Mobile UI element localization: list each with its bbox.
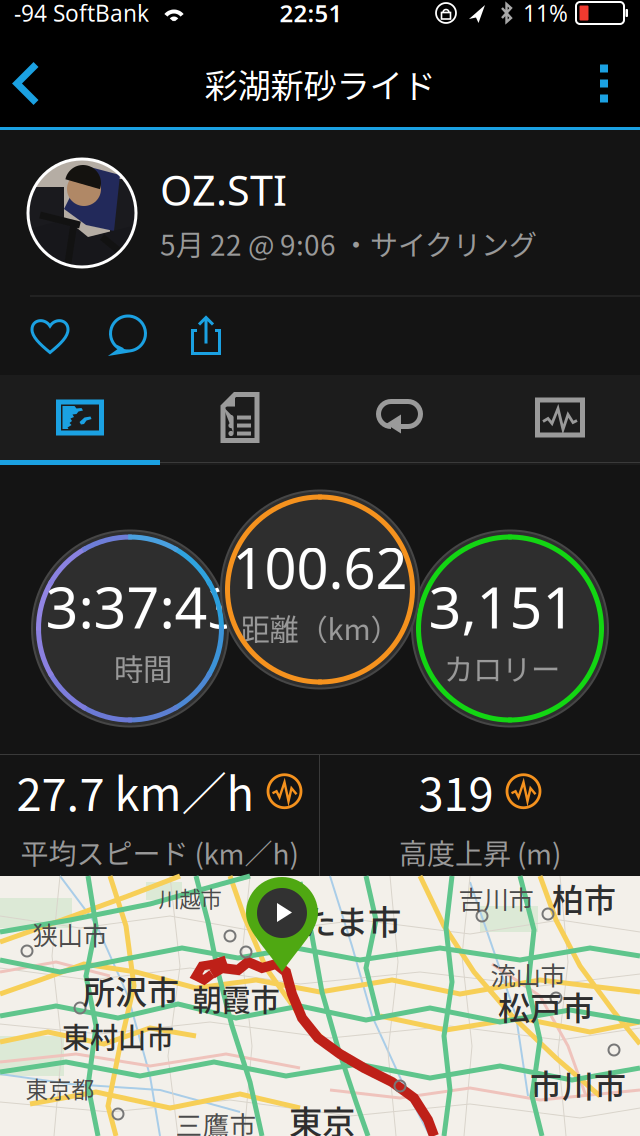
button[interactable]: Share [167, 296, 245, 374]
button[interactable]: Map [0, 375, 160, 460]
staticText: 100.62 [232, 530, 407, 604]
staticText: -94 SoftBank [14, 0, 149, 28]
staticText: 距離（km） [240, 606, 399, 649]
staticText: 3:37:43 [45, 568, 240, 644]
staticText: 3,151 [428, 568, 575, 644]
staticText: 11% [523, 0, 568, 28]
button[interactable]: Back [0, 40, 74, 127]
staticText: 彩湖新砂ライド [204, 59, 435, 108]
staticText: 東村山市 [62, 1016, 174, 1056]
staticText: カロリー [444, 646, 560, 689]
staticText: 22:51 [279, 0, 342, 29]
staticText: 時間 [114, 646, 172, 689]
staticText: 東京都 [25, 1072, 94, 1104]
staticText: 所沢市 [83, 967, 179, 1013]
staticText: 朝霞市 [192, 977, 279, 1019]
staticText: 高度上昇 (m) [399, 832, 561, 872]
staticText: 吉川市 [458, 880, 533, 916]
staticText: 平均スピード (km／h) [20, 832, 298, 872]
staticText: 松戸市 [498, 983, 594, 1029]
button[interactable]: More options [568, 40, 640, 127]
button[interactable]: Details [160, 375, 320, 460]
button[interactable]: Analysis [480, 375, 640, 460]
staticText: 狭山市 [32, 916, 107, 952]
staticText: 5月 22 @ 9:06 ・サイクリング [160, 223, 537, 264]
staticText: たま市 [303, 896, 401, 944]
staticText: 柏市 [552, 875, 616, 921]
staticText: 市川市 [530, 1061, 626, 1107]
staticText: 27.7 km／h [16, 758, 254, 824]
staticText: OZ.STI [160, 162, 287, 217]
button[interactable]: Laps [320, 375, 480, 460]
staticText: 川越市 [158, 883, 221, 913]
staticText: 三鷹市 [175, 1105, 256, 1136]
staticText: 流山市 [490, 956, 565, 992]
button[interactable]: Comment [89, 296, 167, 374]
button[interactable]: Like [11, 296, 89, 374]
staticText: 319 [418, 758, 493, 824]
staticText: 東京 [289, 1096, 355, 1136]
